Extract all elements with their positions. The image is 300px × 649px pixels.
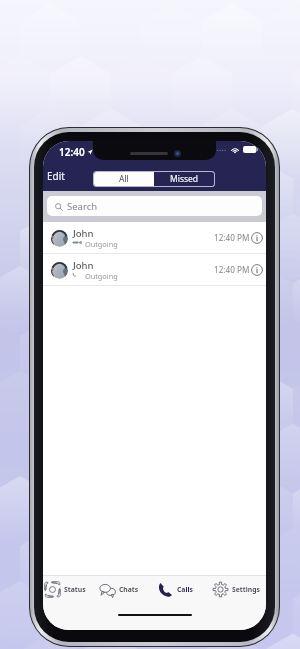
staticText: Calls [177, 585, 193, 594]
button[interactable]: Call info [251, 264, 263, 276]
button[interactable]: Call info [251, 232, 263, 244]
staticText: Settings [232, 585, 260, 594]
staticText: Missed [170, 173, 199, 185]
staticText: All [119, 173, 129, 185]
button[interactable]: Settings [211, 577, 261, 601]
staticText: 12:40 PM [214, 264, 250, 275]
staticText: Outgoing [85, 271, 118, 281]
staticText: John [73, 259, 94, 272]
staticText: Chats [119, 585, 139, 594]
button[interactable]: Search [47, 196, 262, 216]
staticText: Edit [47, 169, 65, 183]
staticText: John [73, 227, 94, 240]
staticText: Search [67, 200, 98, 213]
staticText: Status [64, 585, 86, 594]
button[interactable]: All [94, 172, 154, 186]
button[interactable]: John [43, 222, 266, 254]
button[interactable]: Calls [156, 577, 194, 601]
button[interactable]: Status [43, 577, 87, 601]
button[interactable]: John [43, 254, 266, 286]
staticText: 12:40 PM [214, 232, 250, 243]
button[interactable]: Missed [154, 172, 214, 186]
button[interactable]: Edit [44, 167, 68, 185]
staticText: 12:40 [59, 145, 85, 159]
staticText: Outgoing [85, 239, 118, 249]
button[interactable]: Chats [98, 577, 140, 601]
